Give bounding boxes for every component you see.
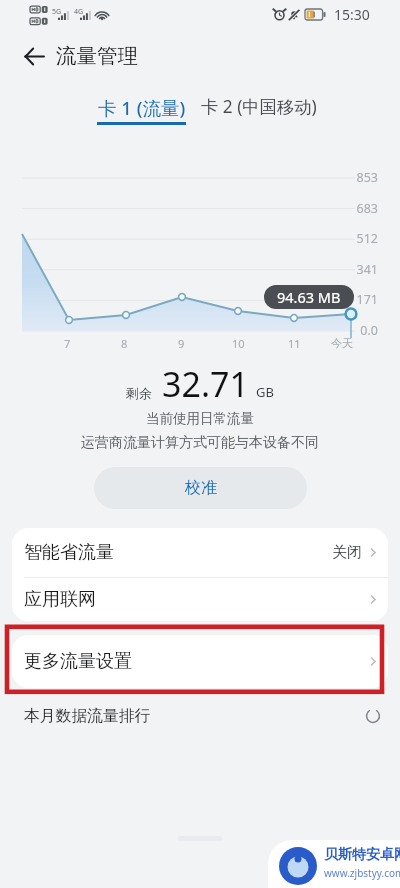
staticText: 0.0 [352,322,378,339]
staticText: 512 [352,230,378,247]
staticText: 10 [232,336,245,351]
staticText: GB [256,383,274,401]
staticText: 8 [121,336,128,351]
staticText: 15:30 [334,5,370,24]
staticText: 94.63 MB [277,287,341,307]
staticText: 更多流量设置 [24,650,132,673]
button[interactable]: 卡 1 (流量) [97,95,186,125]
staticText: 32.71 [162,361,249,407]
staticText: 本月数据流量排行 [24,706,151,726]
button[interactable]: 智能省流量 [12,528,388,577]
button[interactable]: 更多流量设置 [12,635,388,688]
button[interactable]: Back [16,38,52,74]
staticText: 贝斯特安卓网 [324,846,400,864]
staticText: 7 [64,336,71,351]
staticText: 智能省流量 [24,541,114,564]
button[interactable]: 卡 2 (中国移动) [201,95,317,119]
staticText: 4G [74,7,84,17]
staticText: 卡 1 (流量) [98,95,186,120]
staticText: 卡 2 (中国移动) [201,95,317,119]
staticText: 校准 [185,478,217,498]
other: Refresh [364,707,382,725]
button[interactable]: 本月数据流量排行 [0,700,400,732]
staticText: 运营商流量计算方式可能与本设备不同 [81,434,319,452]
staticText: 当前使用日常流量 [146,410,254,427]
staticText: 5G [52,7,62,17]
staticText: 关闭 [332,543,362,562]
staticText: 流量管理 [56,43,138,69]
staticText: 171 [352,291,378,308]
staticText: 应用联网 [24,588,96,611]
staticText: 剩余 [126,385,152,401]
button[interactable]: 校准 [94,467,307,509]
staticText: www.zjbstyy.com [324,866,400,880]
staticText: 11 [288,336,301,351]
staticText: 683 [352,200,378,217]
staticText: 今天 [331,336,353,350]
staticText: 341 [352,261,378,278]
staticText: 853 [352,169,378,186]
staticText: 9 [178,336,185,351]
button[interactable]: 应用联网 [12,578,388,621]
